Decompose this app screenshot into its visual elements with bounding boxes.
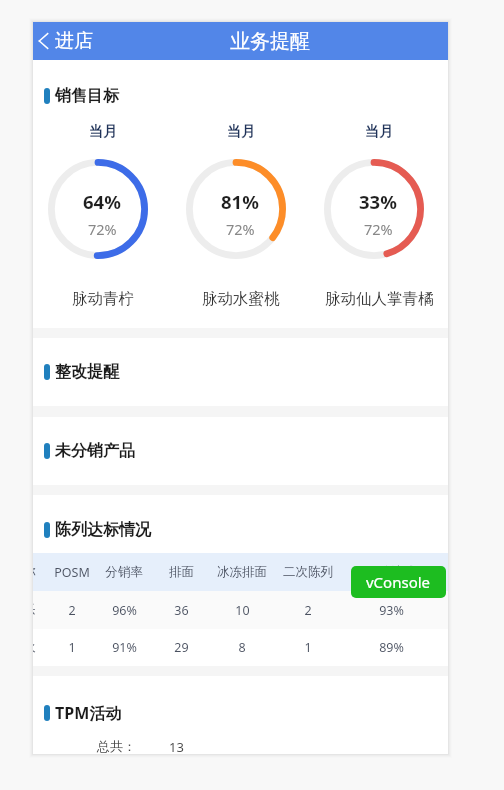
staticText: 91% [112,639,137,656]
staticText: 29 [174,639,189,656]
staticText: 72% [226,219,255,239]
staticText: 当月 [365,123,393,141]
staticText: 2 [68,602,76,619]
staticText: 标准达成 [366,564,416,580]
staticText: 33% [359,189,397,214]
staticText: 10 [235,602,250,619]
staticText: 称 [33,564,36,580]
staticText: vConsole [366,572,431,592]
staticText: 脉动仙人掌青橘 [325,289,434,309]
staticText: 72% [364,219,393,239]
staticText: 1 [304,639,312,656]
staticText: 业务提醒 [230,29,310,54]
staticText: POSM [54,564,90,581]
staticText: 二次陈列 [283,564,333,580]
staticText: 冰冻排面 [217,564,267,580]
staticText: 总共： [97,738,136,754]
staticText: 13 [169,738,184,754]
staticText: 分销率 [105,564,143,580]
staticText: 当月 [227,123,255,141]
staticText: 进店 [55,29,93,53]
button[interactable]: Back [33,29,101,53]
staticText: 64% [83,189,121,214]
staticText: 8 [238,639,246,656]
staticText: 陈列达标情况 [55,520,151,540]
staticText: 81% [221,189,259,214]
staticText: 乐 [33,602,36,618]
staticText: 72% [88,219,117,239]
staticText: 2 [304,602,312,619]
button[interactable]: vConsole [351,566,446,598]
staticText: 排面 [169,564,194,580]
staticText: 销售目标 [55,86,119,106]
staticText: 1 [68,639,76,656]
staticText: 93% [379,602,404,619]
staticText: 36 [174,602,189,619]
staticText: 当月 [89,123,117,141]
staticText: 未分销产品 [55,441,135,461]
staticText: 整改提醒 [55,362,119,382]
staticText: TPM活动 [55,702,122,724]
staticText: 脉动水蜜桃 [202,289,280,309]
staticText: 96% [112,602,137,619]
staticText: 89% [379,639,404,656]
staticText: 脉动青柠 [72,289,134,309]
staticText: 水 [33,640,36,656]
